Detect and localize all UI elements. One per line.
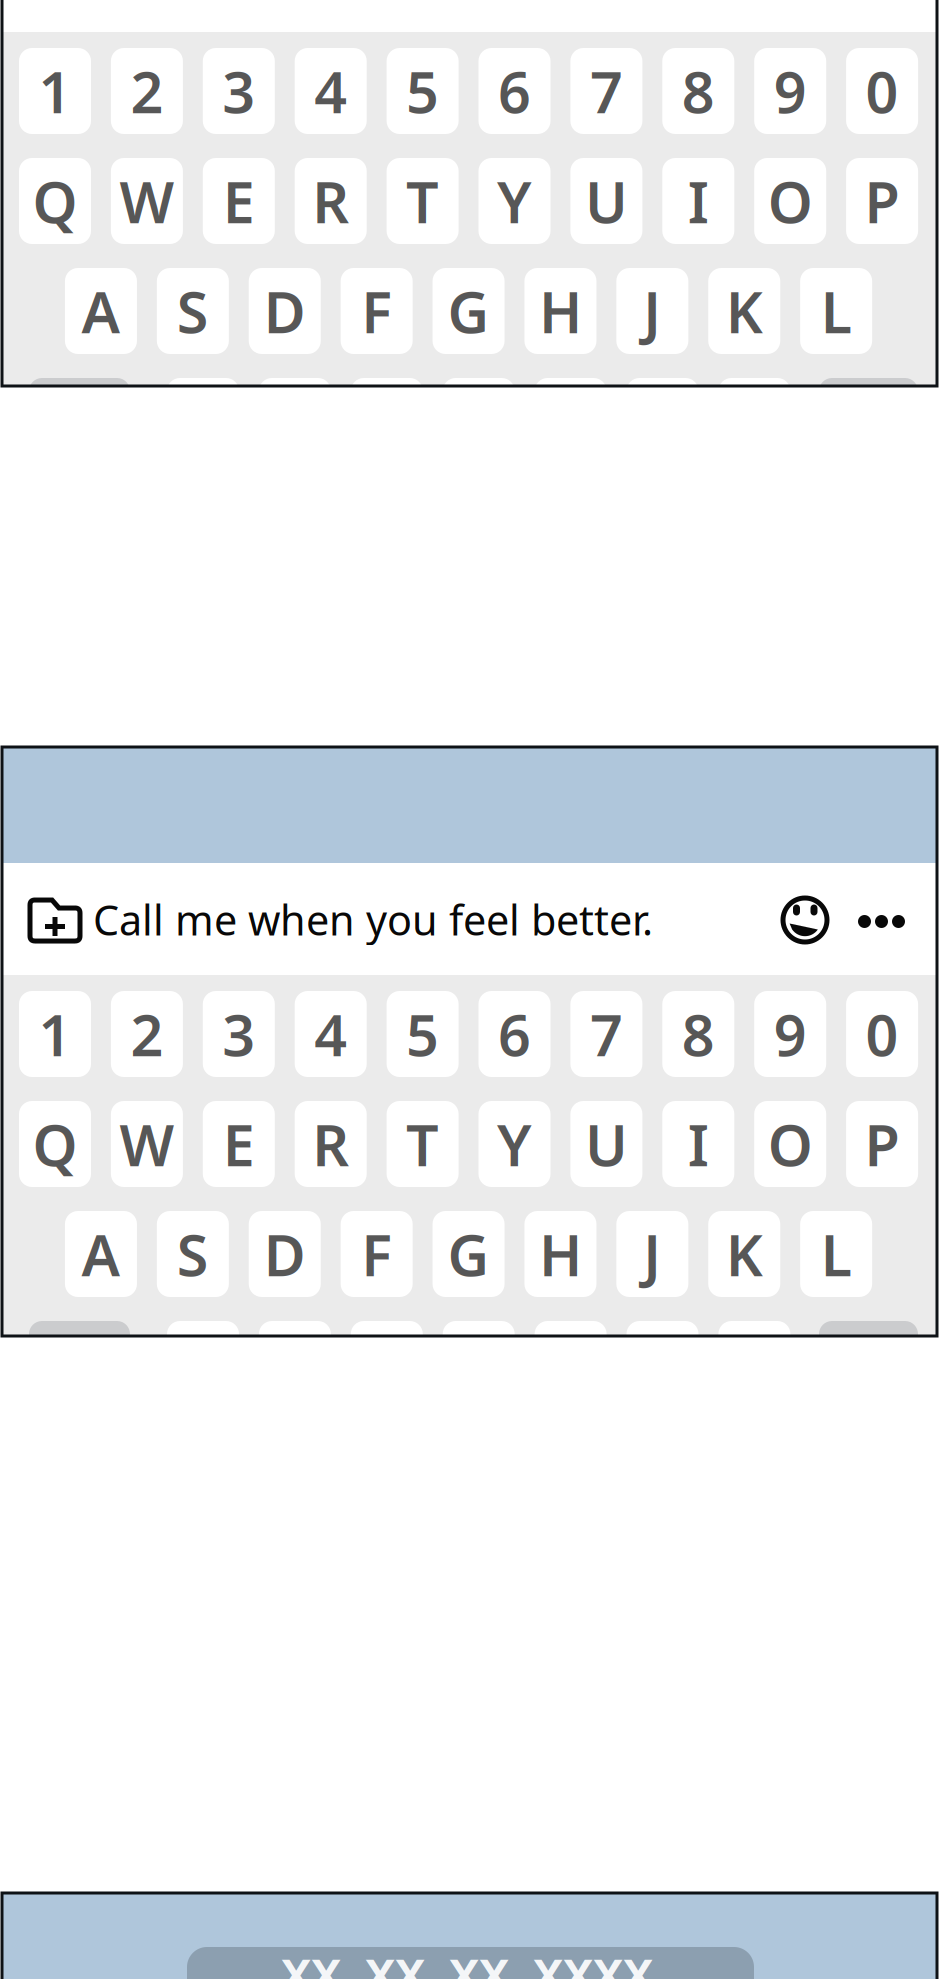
button[interactable]: S xyxy=(157,1211,229,1297)
staticText: 1 xyxy=(38,53,71,129)
button[interactable]: W xyxy=(111,1101,183,1187)
button[interactable]: 8 xyxy=(662,991,734,1077)
button[interactable]: 6 xyxy=(478,991,550,1077)
button[interactable]: C xyxy=(351,378,423,464)
button[interactable]: Y xyxy=(478,1101,550,1187)
staticText: W xyxy=(119,163,174,239)
button[interactable]: E xyxy=(203,1101,275,1187)
button[interactable]: O xyxy=(754,1101,826,1187)
staticText: 4 xyxy=(314,996,347,1072)
button[interactable]: Q xyxy=(19,158,91,244)
button[interactable]: 1 xyxy=(19,991,91,1077)
staticText: 1 xyxy=(38,996,71,1072)
button[interactable]: D xyxy=(249,1211,321,1297)
button[interactable]: Z xyxy=(167,378,239,464)
button[interactable]: Y xyxy=(478,158,550,244)
staticText: R xyxy=(312,1106,349,1182)
button[interactable]: M xyxy=(718,1321,790,1407)
button[interactable]: B xyxy=(535,378,607,464)
button[interactable]: O xyxy=(754,158,826,244)
button[interactable]: W xyxy=(111,158,183,244)
button[interactable]: D xyxy=(249,268,321,354)
button[interactable]: H xyxy=(524,268,596,354)
button[interactable]: 5 xyxy=(387,991,459,1077)
staticText: Y xyxy=(497,1106,532,1182)
button[interactable]: T xyxy=(387,158,459,244)
button[interactable]: 4 xyxy=(295,991,367,1077)
button[interactable]: R xyxy=(295,1101,367,1187)
button[interactable]: I xyxy=(662,1101,734,1187)
staticText: J xyxy=(643,273,661,349)
button[interactable] xyxy=(819,378,918,464)
button[interactable]: R xyxy=(295,158,367,244)
button[interactable]: F xyxy=(341,1211,413,1297)
button[interactable]: Q xyxy=(19,1101,91,1187)
staticText: Q xyxy=(32,163,77,239)
button[interactable]: C xyxy=(351,1321,423,1407)
button[interactable]: 7 xyxy=(570,991,642,1077)
staticText: 2 xyxy=(130,53,163,129)
button[interactable]: J xyxy=(616,1211,688,1297)
button[interactable]: 6 xyxy=(478,48,550,134)
button[interactable]: 5 xyxy=(387,48,459,134)
button[interactable]: 3 xyxy=(203,48,275,134)
button[interactable]: 0 xyxy=(846,991,918,1077)
button[interactable]: I xyxy=(662,158,734,244)
button[interactable]: A xyxy=(65,268,137,354)
button[interactable]: 8 xyxy=(662,48,734,134)
staticText: N xyxy=(640,383,685,459)
button[interactable]: 9 xyxy=(754,48,826,134)
button[interactable]: N xyxy=(626,378,698,464)
button[interactable]: V xyxy=(443,1321,515,1407)
button[interactable]: T xyxy=(387,1101,459,1187)
button[interactable]: L xyxy=(800,268,872,354)
button[interactable]: Emoji xyxy=(780,895,830,945)
button[interactable]: F xyxy=(341,268,413,354)
button[interactable]: M xyxy=(718,378,790,464)
staticText: 9 xyxy=(774,996,807,1072)
staticText: B xyxy=(552,383,590,459)
button[interactable]: 3 xyxy=(203,991,275,1077)
button[interactable]: P xyxy=(846,158,918,244)
button[interactable]: U xyxy=(570,158,642,244)
button[interactable]: 9 xyxy=(754,991,826,1077)
button[interactable]: G xyxy=(433,1211,505,1297)
staticText: S xyxy=(177,273,209,349)
staticText: V xyxy=(461,1326,497,1402)
staticText: M xyxy=(728,383,781,459)
button[interactable]: H xyxy=(524,1211,596,1297)
button[interactable]: L xyxy=(800,1211,872,1297)
button[interactable]: K xyxy=(708,268,780,354)
button[interactable]: Z xyxy=(167,1321,239,1407)
button[interactable]: More options xyxy=(858,915,905,928)
button[interactable] xyxy=(29,378,130,464)
button[interactable]: B xyxy=(535,1321,607,1407)
button[interactable]: 1 xyxy=(19,48,91,134)
staticText: 0 xyxy=(866,996,899,1072)
button[interactable]: 0 xyxy=(846,48,918,134)
button[interactable]: U xyxy=(570,1101,642,1187)
staticText: U xyxy=(585,1106,628,1182)
button[interactable]: P xyxy=(846,1101,918,1187)
button[interactable]: K xyxy=(708,1211,780,1297)
staticText: L xyxy=(821,273,852,349)
button[interactable]: E xyxy=(203,158,275,244)
button[interactable] xyxy=(29,1321,130,1407)
button[interactable]: J xyxy=(616,268,688,354)
button[interactable] xyxy=(819,1321,918,1407)
button[interactable]: Add attachment xyxy=(28,896,82,944)
button[interactable]: A xyxy=(65,1211,137,1297)
staticText: 9 xyxy=(774,53,807,129)
button[interactable]: X xyxy=(259,378,331,464)
button[interactable]: G xyxy=(433,268,505,354)
staticText: D xyxy=(264,273,306,349)
button[interactable]: 4 xyxy=(295,48,367,134)
button[interactable]: 2 xyxy=(111,48,183,134)
button[interactable]: V xyxy=(443,378,515,464)
button[interactable]: X xyxy=(259,1321,331,1407)
button[interactable]: N xyxy=(626,1321,698,1407)
button[interactable]: 7 xyxy=(570,48,642,134)
button[interactable]: S xyxy=(157,268,229,354)
button[interactable]: 2 xyxy=(111,991,183,1077)
staticText: 5 xyxy=(406,996,439,1072)
